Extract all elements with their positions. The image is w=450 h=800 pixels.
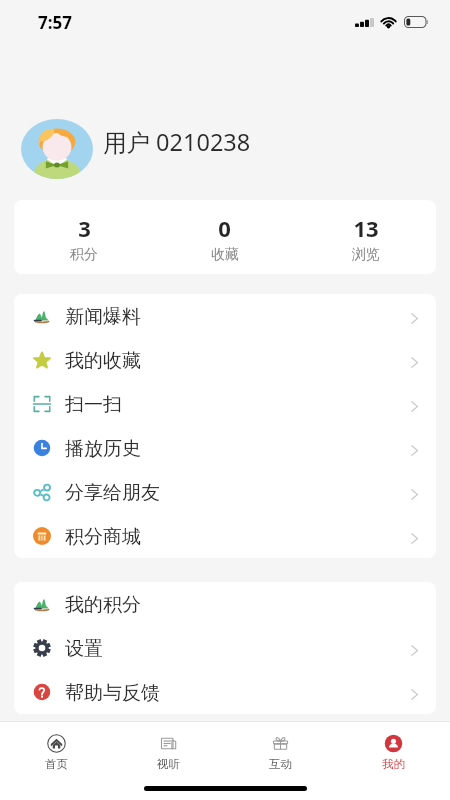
staticText: 积分商城 <box>65 525 141 549</box>
staticText: 设置 <box>65 637 103 661</box>
staticText: 互动 <box>269 757 292 771</box>
staticText: 3 <box>78 213 91 243</box>
staticText: 扫一扫 <box>65 393 122 417</box>
staticText: 我的收藏 <box>65 349 141 373</box>
staticText: 0 <box>218 213 231 243</box>
staticText: 播放历史 <box>65 437 141 461</box>
button[interactable]: 13 <box>295 211 436 264</box>
staticText: 我的积分 <box>65 593 141 617</box>
staticText: 分享给朋友 <box>65 481 160 505</box>
button[interactable]: 我的收藏 <box>14 338 436 382</box>
button[interactable]: 分享给朋友 <box>14 470 436 514</box>
button[interactable]: 互动 <box>224 734 337 771</box>
staticText: 用户 0210238 <box>103 126 251 158</box>
staticText: 帮助与反馈 <box>65 681 160 705</box>
button[interactable]: 0 <box>154 211 295 264</box>
button[interactable]: 新闻爆料 <box>14 294 436 338</box>
staticText: 积分 <box>70 246 98 264</box>
button[interactable]: 首页 <box>0 734 112 771</box>
staticText: 新闻爆料 <box>65 305 141 329</box>
button[interactable]: 视听 <box>112 734 224 771</box>
staticText: 我的 <box>382 757 405 771</box>
staticText: 7:57 <box>38 11 72 34</box>
staticText: 视听 <box>157 757 180 771</box>
button[interactable]: 积分商城 <box>14 514 436 558</box>
button[interactable]: 3 <box>14 211 154 264</box>
staticText: 13 <box>353 213 379 243</box>
button[interactable]: 我的积分 <box>14 582 436 626</box>
button[interactable]: 扫一扫 <box>14 382 436 426</box>
staticText: 首页 <box>45 757 68 771</box>
button[interactable]: 帮助与反馈 <box>14 670 436 714</box>
staticText: 浏览 <box>352 246 380 264</box>
button[interactable]: 我的 <box>337 734 450 771</box>
button[interactable]: 播放历史 <box>14 426 436 470</box>
button[interactable]: 设置 <box>14 626 436 670</box>
staticText: 收藏 <box>211 246 239 264</box>
